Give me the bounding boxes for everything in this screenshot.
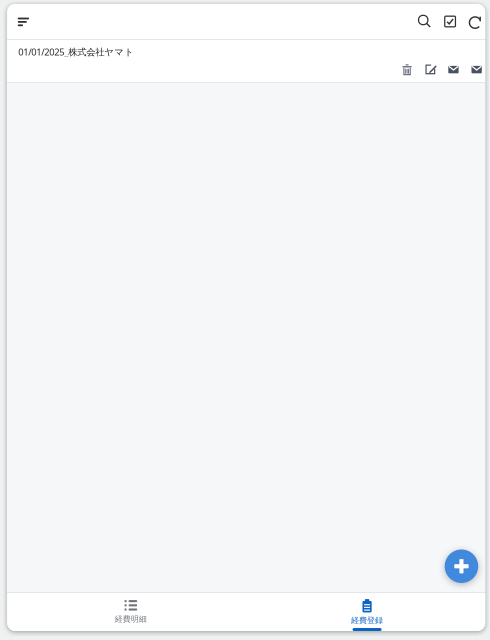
button[interactable]: 経費登録 xyxy=(249,593,485,631)
button[interactable]: 経費明細 xyxy=(13,593,249,631)
button[interactable]: Select xyxy=(443,14,458,29)
button[interactable]: Add xyxy=(445,549,478,583)
button[interactable]: Send mail xyxy=(470,63,483,77)
button[interactable]: Sort xyxy=(10,9,36,35)
button[interactable]: Refresh xyxy=(468,14,483,29)
staticText: 経費登録 xyxy=(351,615,383,625)
button[interactable]: Delete xyxy=(400,63,414,77)
button[interactable]: Search xyxy=(417,14,432,29)
button[interactable]: Edit xyxy=(424,63,437,77)
staticText: 01/01/2025_株式会社ヤマト xyxy=(18,46,134,58)
button[interactable]: Mail xyxy=(447,63,460,77)
staticText: 経費明細 xyxy=(115,614,147,624)
